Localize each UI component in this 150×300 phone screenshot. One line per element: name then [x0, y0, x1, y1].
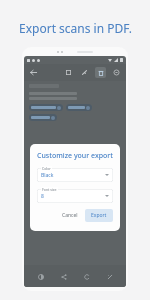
- button[interactable]: 8: [37, 189, 113, 203]
- button[interactable]: Back: [28, 67, 39, 78]
- staticText: Cancel: [62, 212, 78, 219]
- staticText: Export scans in PDF.: [19, 20, 132, 36]
- button[interactable]: Contrast: [34, 270, 47, 283]
- button[interactable]: Share: [57, 270, 70, 283]
- button[interactable]: Edit: [79, 67, 90, 78]
- staticText: Customize your export: [37, 151, 113, 161]
- button[interactable]: [66, 104, 92, 111]
- button[interactable]: Crop: [63, 67, 74, 78]
- button[interactable]: Cancel: [58, 209, 82, 222]
- staticText: Font size: [42, 187, 57, 192]
- button[interactable]: Magic: [103, 270, 116, 283]
- button[interactable]: Delete: [95, 67, 106, 78]
- staticText: Export: [91, 212, 107, 219]
- button[interactable]: More: [111, 67, 122, 78]
- button[interactable]: [29, 104, 63, 111]
- button[interactable]: [29, 114, 57, 121]
- staticText: Black: [41, 172, 54, 179]
- staticText: 8: [41, 193, 44, 200]
- button[interactable]: Black: [37, 168, 113, 182]
- button[interactable]: Rotate: [80, 270, 93, 283]
- button[interactable]: Export: [85, 209, 113, 222]
- staticText: Color: [42, 166, 51, 171]
